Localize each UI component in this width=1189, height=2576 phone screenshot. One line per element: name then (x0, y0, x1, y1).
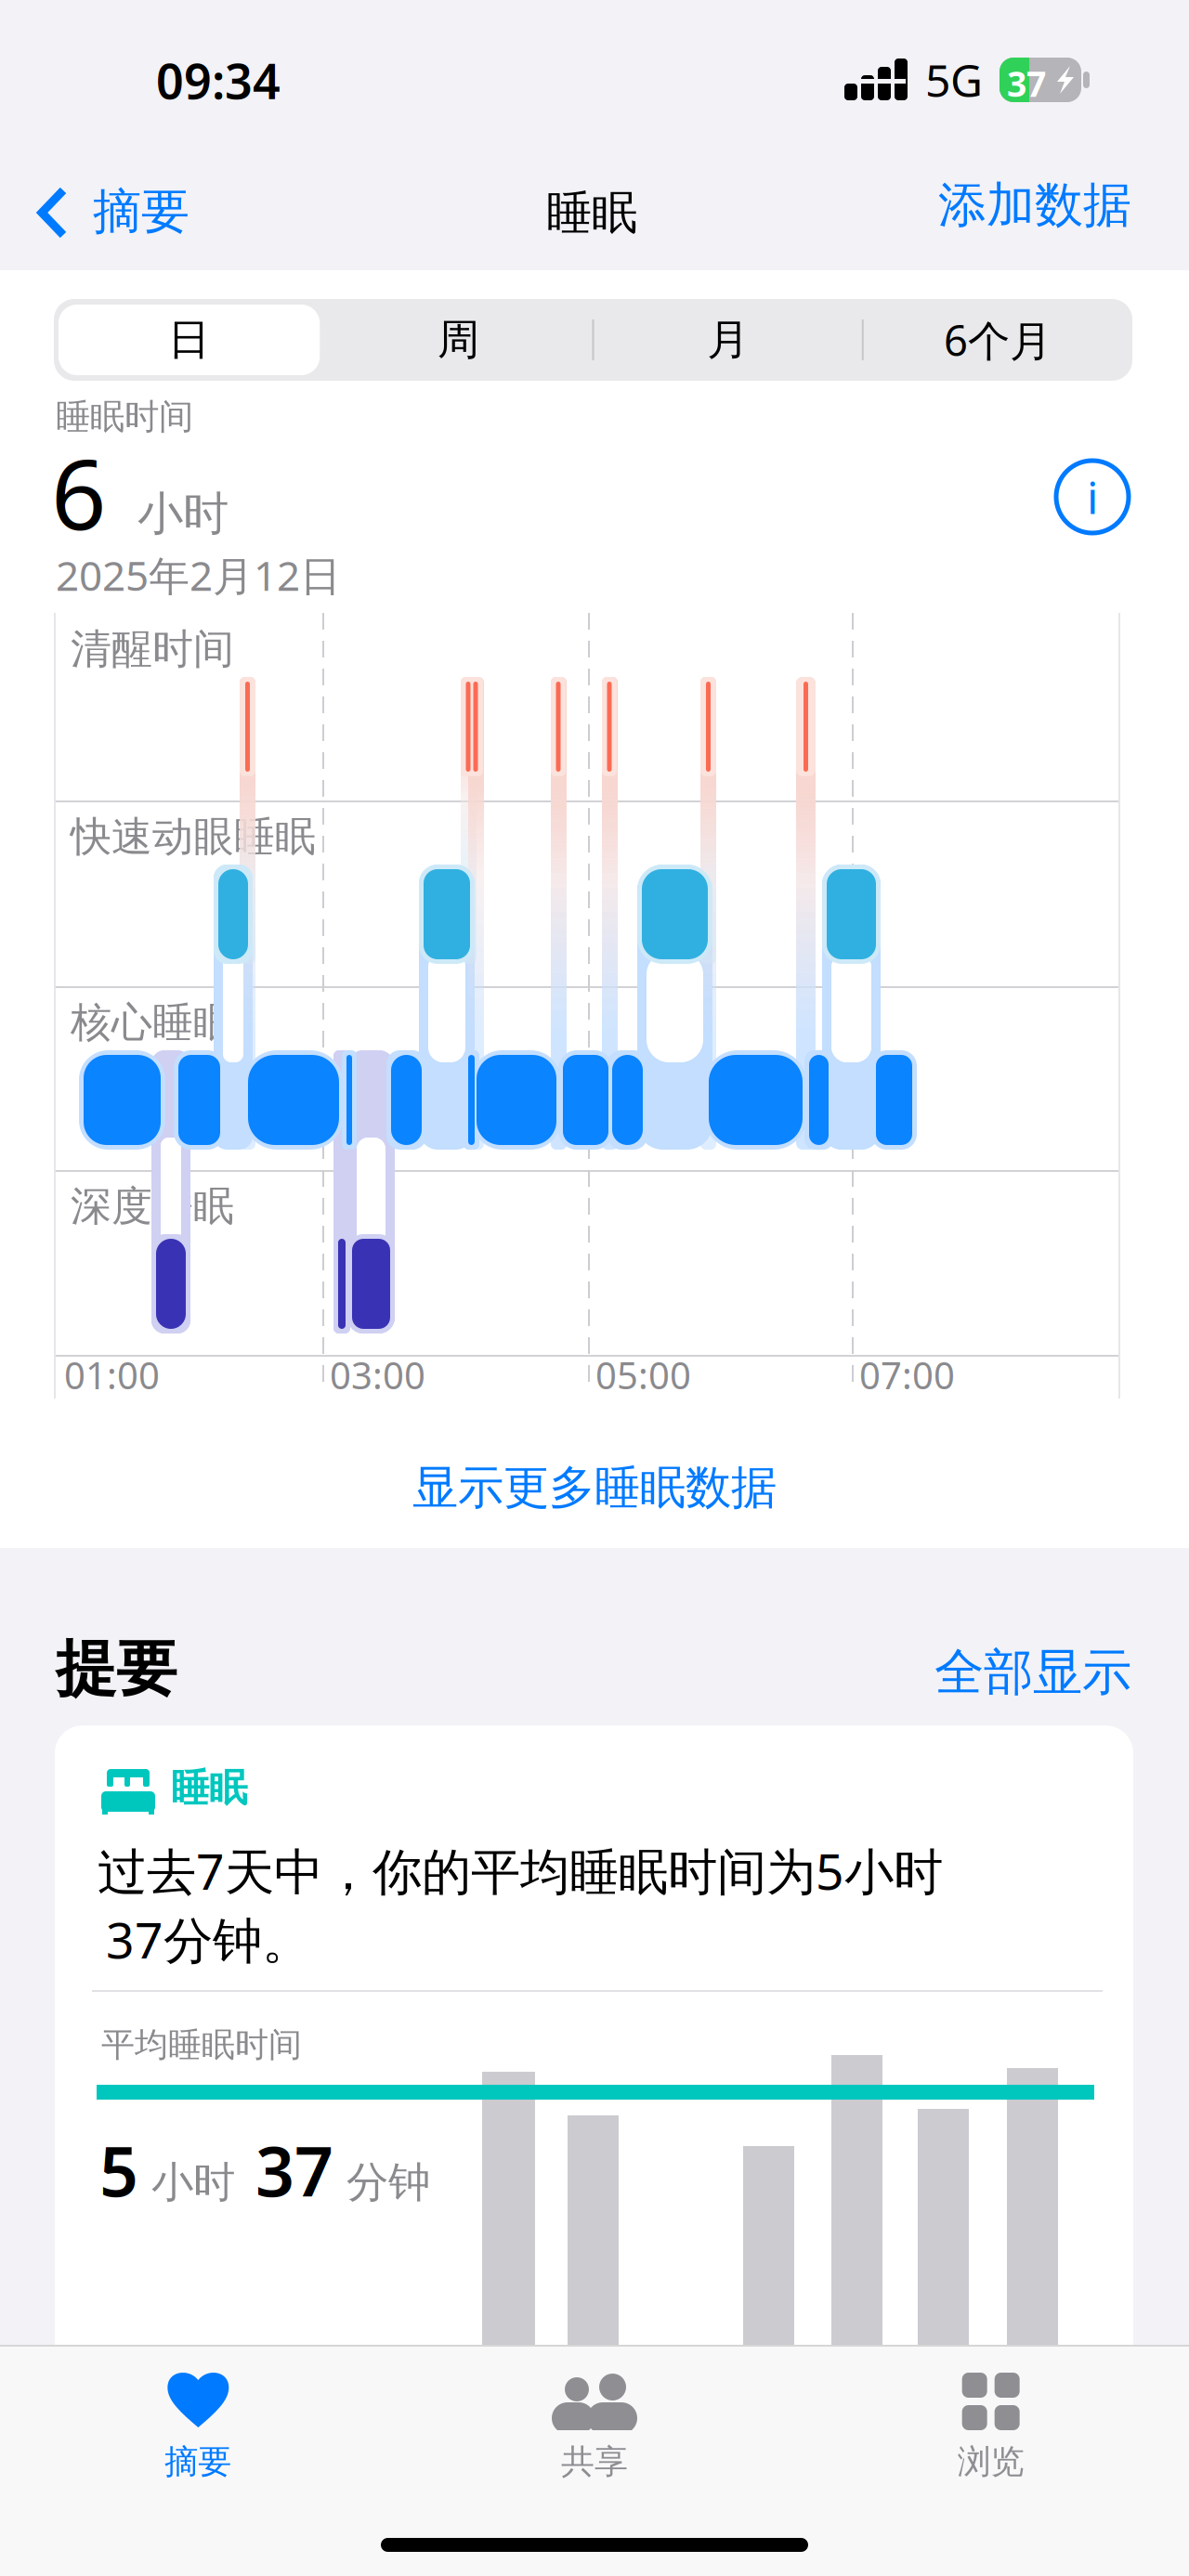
staticText: 37 (255, 2125, 333, 2215)
button[interactable]: 关于睡眠 (1051, 455, 1134, 539)
staticText: 37 (1007, 60, 1046, 106)
staticText: 提要 (56, 1632, 176, 1706)
staticText: 过去7天中，你的平均睡眠时间为5小时 (98, 1838, 943, 1903)
staticText: 5 (99, 2125, 138, 2215)
button[interactable]: 添加数据 (908, 149, 1131, 262)
staticText: 01:00 (64, 1350, 160, 1400)
staticText: 小时 (151, 2156, 235, 2208)
staticText: 2025年2月12日 (56, 548, 341, 602)
staticText: 日 (168, 314, 210, 366)
staticText: 平均睡眠时间 (101, 2024, 302, 2065)
staticText: 全部显示 (934, 1642, 1131, 1703)
button[interactable]: 周 (323, 299, 593, 381)
staticText: 03:00 (330, 1350, 425, 1400)
staticText: 37分钟。 (106, 1906, 311, 1972)
staticText: 分钟 (346, 2156, 430, 2208)
button[interactable]: 摘要 (0, 149, 214, 262)
button[interactable]: 摘要 (0, 2345, 396, 2503)
staticText: 小时 (137, 486, 229, 542)
staticText: 睡眠 (171, 1764, 247, 1812)
staticText: 深度睡眠 (71, 1181, 234, 1231)
staticText: i (1087, 467, 1098, 526)
staticText: 浏览 (957, 2441, 1024, 2482)
button[interactable]: 日 (54, 299, 323, 381)
button[interactable]: 6个月 (863, 299, 1132, 381)
staticText: 07:00 (859, 1350, 955, 1400)
staticText: 共享 (561, 2441, 628, 2482)
staticText: 5G (925, 50, 983, 109)
button[interactable]: 全部显示 (890, 1640, 1131, 1705)
button[interactable]: 显示更多睡眠数据 (0, 1432, 1189, 1543)
button[interactable]: 月 (593, 299, 863, 381)
staticText: 6 (51, 428, 106, 556)
staticText: 睡眠 (546, 185, 637, 241)
staticText: 05:00 (595, 1350, 691, 1400)
staticText: 快速动眼睡眠 (71, 812, 316, 862)
staticText: 摘要 (165, 2441, 232, 2482)
staticText: 月 (707, 314, 749, 366)
staticText: 睡眠时间 (56, 396, 193, 438)
staticText: 核心睡眠 (71, 997, 234, 1047)
staticText: 添加数据 (938, 176, 1131, 235)
staticText: 周 (437, 314, 479, 366)
staticText: 09:34 (156, 48, 281, 112)
staticText: 显示更多睡眠数据 (412, 1460, 777, 1516)
staticText: 清醒时间 (71, 624, 234, 674)
button[interactable]: 浏览 (793, 2345, 1189, 2503)
button[interactable]: 共享 (396, 2345, 793, 2503)
staticText: 摘要 (93, 182, 189, 241)
staticText: 6个月 (944, 312, 1051, 368)
